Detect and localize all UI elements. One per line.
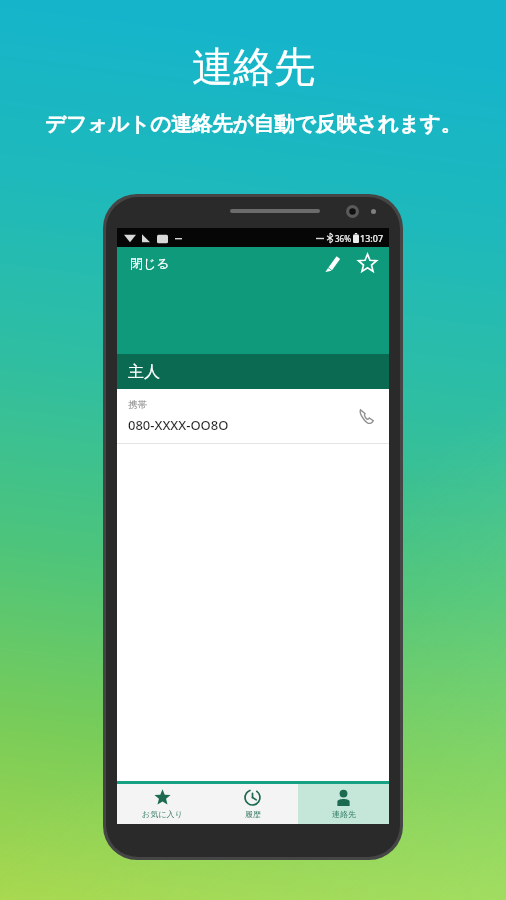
staticText: お気に入り [142,809,183,819]
button[interactable]: Call [353,403,379,429]
staticText: 36% [335,233,351,244]
staticText: 連絡先 [192,42,315,94]
button[interactable]: Favorite [353,249,382,278]
button[interactable]: Edit [318,249,347,278]
staticText: デフォルトの連絡先が自動で反映されます。 [45,111,461,137]
button[interactable]: 主人 [117,354,389,389]
staticText: 携帯 [128,399,147,411]
staticText: 13:07 [360,232,384,244]
staticText: 連絡先 [332,809,356,819]
staticText: 履歴 [245,809,261,819]
button[interactable]: 履歴 [207,784,298,824]
staticText: 閉じる [130,255,170,271]
staticText: 080-XXXX-OO8O [128,416,229,434]
staticText: 主人 [128,362,160,382]
button[interactable]: 携帯 [117,389,389,444]
button[interactable]: お気に入り [117,784,207,824]
button[interactable]: 閉じる [126,251,174,275]
button[interactable]: 連絡先 [298,784,389,824]
